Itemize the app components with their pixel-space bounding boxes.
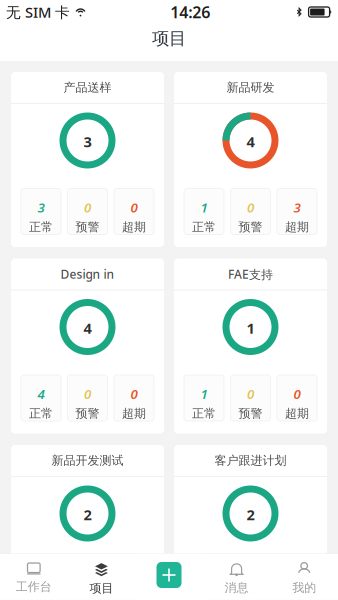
staticText: 预警 [75, 593, 99, 600]
staticText: 超期 [122, 406, 146, 421]
button[interactable]: 新建 [156, 562, 181, 588]
staticText: 1 [200, 385, 207, 403]
button[interactable]: 我的 [270, 554, 338, 600]
staticText: 0 [293, 571, 300, 589]
staticText: 3 [293, 198, 300, 216]
staticText: 1 [200, 198, 207, 216]
button[interactable]: 产品送样 [11, 72, 164, 247]
staticText: 预警 [238, 406, 262, 421]
staticText: 0 [84, 571, 91, 589]
button[interactable]: 消息 [203, 554, 270, 600]
staticText: Design in [60, 266, 114, 282]
staticText: 超期 [122, 220, 146, 234]
staticText: 预警 [75, 406, 99, 421]
button[interactable]: 客户跟进计划 [174, 445, 327, 600]
staticText: 0 [130, 385, 137, 403]
staticText: 超期 [285, 220, 309, 234]
staticText: 0 [84, 385, 91, 403]
staticText: 正常 [192, 220, 216, 234]
button[interactable]: 项目 [68, 554, 135, 600]
button[interactable]: Design in [11, 258, 164, 433]
staticText: 超期 [285, 406, 309, 421]
staticText: 新品开发测试 [51, 453, 123, 468]
button[interactable]: FAE支持 [174, 258, 327, 433]
staticText: 项目 [152, 28, 186, 49]
staticText: 正常 [192, 406, 216, 421]
button[interactable]: 新品开发测试 [11, 445, 164, 600]
button[interactable]: 新品研发 [174, 72, 327, 247]
staticText: 4 [37, 385, 44, 403]
staticText: 消息 [225, 580, 249, 595]
staticText: 3 [83, 132, 91, 151]
staticText: 新品研发 [226, 80, 274, 95]
staticText: 工作台 [16, 579, 52, 594]
staticText: 2 [37, 571, 44, 589]
staticText: 0 [84, 198, 91, 216]
staticText: 14:26 [170, 1, 210, 23]
staticText: 项目 [89, 581, 113, 596]
staticText: 正常 [29, 220, 53, 234]
staticText: 2 [83, 505, 91, 524]
staticText: 无 SIM 卡 [6, 2, 70, 22]
staticText: 0 [130, 198, 137, 216]
staticText: 我的 [292, 580, 316, 595]
staticText: 4 [246, 132, 254, 151]
staticText: 0 [247, 198, 254, 216]
button[interactable]: 工作台 [0, 554, 68, 600]
staticText: 预警 [238, 220, 262, 234]
staticText: 预警 [75, 220, 99, 234]
staticText: FAE支持 [228, 266, 273, 282]
staticText: 预警 [238, 593, 262, 600]
staticText: 正常 [29, 406, 53, 421]
staticText: 0 [247, 385, 254, 403]
staticText: 产品送样 [63, 80, 111, 95]
staticText: 1 [246, 318, 254, 338]
staticText: 3 [37, 198, 44, 216]
staticText: 4 [83, 318, 91, 338]
staticText: 客户跟进计划 [214, 453, 286, 468]
staticText: 0 [293, 385, 300, 403]
staticText: 2 [246, 505, 254, 524]
